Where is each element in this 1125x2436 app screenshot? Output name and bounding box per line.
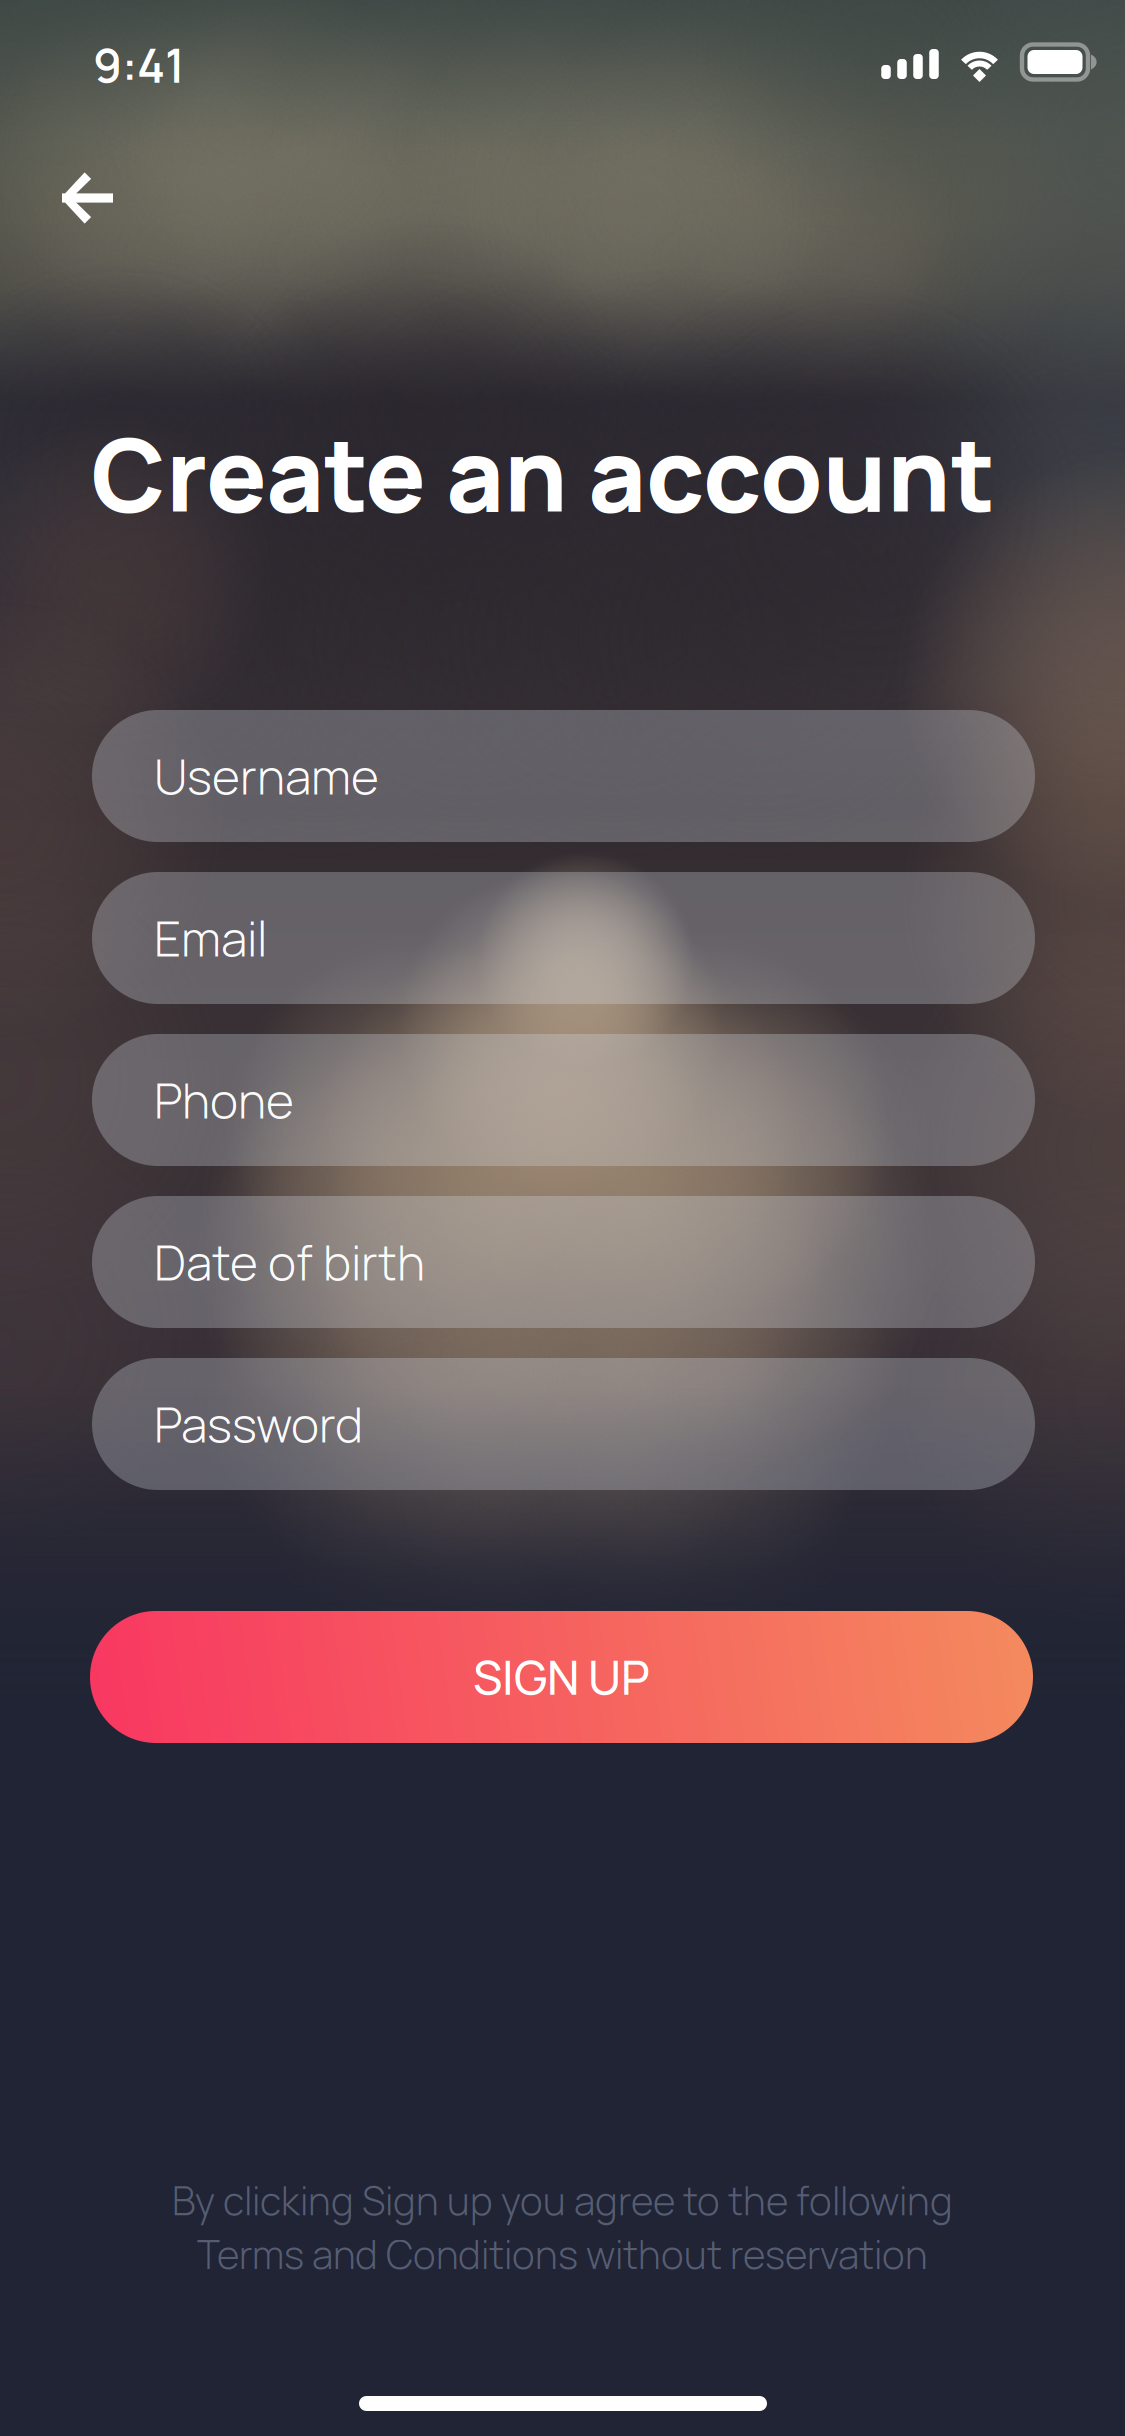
button[interactable]: SIGN UP: [90, 1611, 1033, 1743]
staticText: Phone: [154, 1067, 294, 1133]
staticText: 9:41: [93, 33, 185, 97]
button[interactable]: Password: [92, 1358, 1035, 1490]
staticText: Date of birth: [154, 1229, 425, 1295]
staticText: Email: [154, 905, 267, 971]
staticText: Create an account: [91, 405, 995, 542]
staticText: By clicking Sign up you agree to the fol…: [172, 2174, 953, 2227]
staticText: Username: [154, 743, 379, 809]
staticText: Password: [154, 1391, 363, 1457]
button[interactable]: Phone: [92, 1034, 1035, 1166]
button[interactable]: Username: [92, 710, 1035, 842]
button[interactable]: Email: [92, 872, 1035, 1004]
button[interactable]: Date of birth: [92, 1196, 1035, 1328]
staticText: Terms and Conditions without reservation: [197, 2228, 928, 2281]
button[interactable]: Back: [28, 146, 148, 250]
staticText: SIGN UP: [473, 1645, 650, 1709]
